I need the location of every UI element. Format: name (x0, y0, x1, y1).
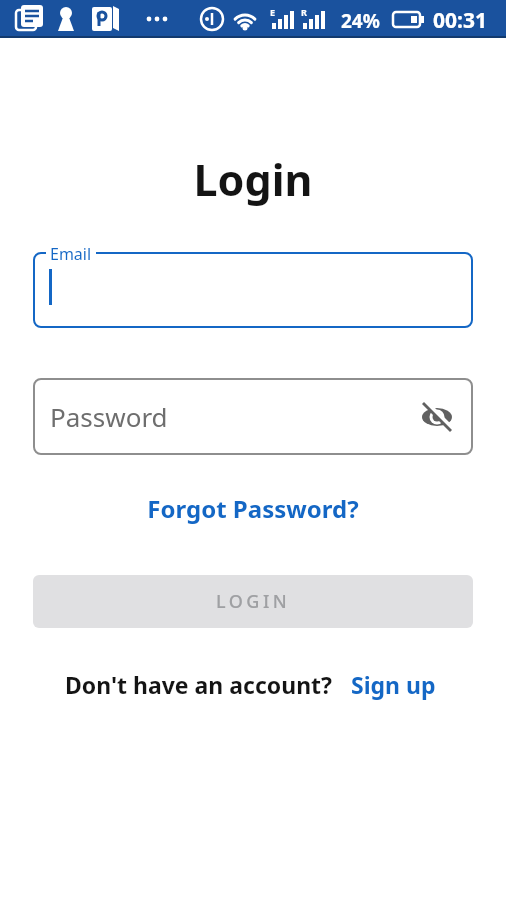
staticText: E (270, 6, 276, 18)
staticText: 24% (341, 8, 380, 34)
staticText: Email (50, 243, 92, 265)
button[interactable]: Password (33, 378, 473, 455)
staticText: Password (50, 399, 168, 434)
button[interactable] (417, 397, 457, 437)
button[interactable] (33, 252, 473, 328)
button[interactable]: LOGIN (33, 575, 473, 628)
staticText: R (301, 6, 307, 18)
button[interactable]: Sign up (351, 669, 436, 700)
staticText: Don't have an account? (65, 669, 333, 700)
staticText: LOGIN (216, 589, 291, 614)
staticText: 00:31 (433, 6, 487, 35)
button[interactable]: Forgot Password? (0, 492, 506, 525)
staticText: Login (0, 150, 506, 209)
